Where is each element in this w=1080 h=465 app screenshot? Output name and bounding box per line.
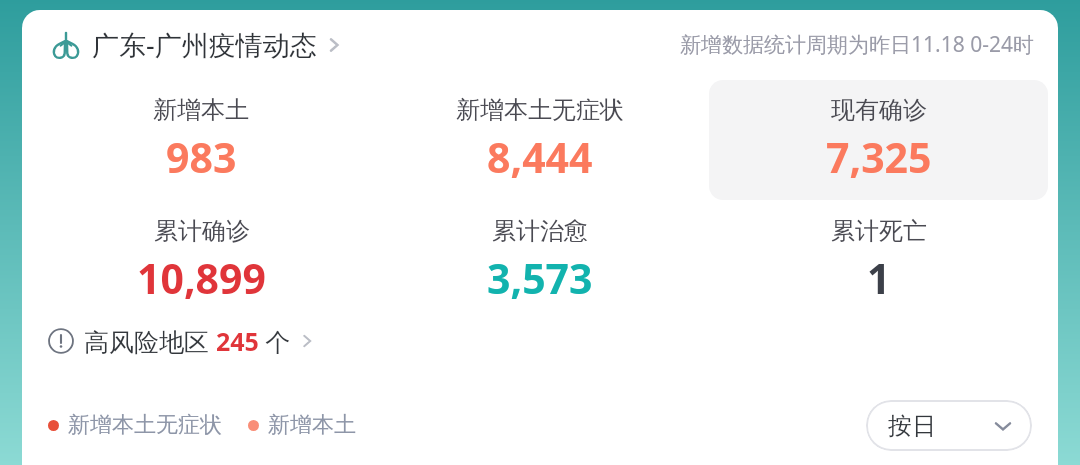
- other: Warning: [48, 328, 74, 354]
- staticText: 高风险地区: [84, 324, 216, 358]
- button[interactable]: 现有确诊: [709, 80, 1048, 200]
- staticText: 新增本土无症状: [456, 95, 624, 125]
- button[interactable]: 新增本土: [32, 78, 370, 202]
- staticText: 按日: [888, 411, 936, 441]
- staticText: 累计死亡: [831, 216, 927, 246]
- staticText: 累计治愈: [492, 216, 588, 246]
- button[interactable]: Warning: [48, 324, 317, 358]
- staticText: 983: [166, 129, 237, 185]
- button[interactable]: Epidemic: [50, 26, 345, 63]
- staticText: 个: [259, 324, 291, 358]
- staticText: 累计确诊: [154, 216, 250, 246]
- button[interactable]: 新增本土: [248, 411, 356, 439]
- staticText: 7,325: [826, 129, 932, 185]
- staticText: 现有确诊: [831, 95, 927, 125]
- staticText: 新增本土: [153, 95, 249, 125]
- button[interactable]: 累计治愈: [370, 202, 709, 320]
- button[interactable]: 累计确诊: [32, 202, 370, 320]
- staticText: 新增数据统计周期为昨日11.18 0-24时: [680, 30, 1034, 59]
- button[interactable]: 新增本土无症状: [370, 78, 709, 202]
- staticText: 10,899: [137, 250, 266, 306]
- staticText: 245: [216, 324, 259, 358]
- staticText: 广东-广州疫情动态: [92, 26, 317, 63]
- staticText: 新增本土无症状: [68, 411, 222, 439]
- staticText: 8,444: [487, 129, 593, 185]
- staticText: 3,573: [487, 250, 593, 306]
- button[interactable]: 按日: [866, 400, 1032, 451]
- other: Epidemic: [50, 29, 82, 61]
- button[interactable]: 累计死亡: [709, 202, 1048, 320]
- button[interactable]: 新增本土无症状: [48, 411, 222, 439]
- staticText: 1: [867, 250, 891, 306]
- staticText: 新增本土: [268, 411, 356, 439]
